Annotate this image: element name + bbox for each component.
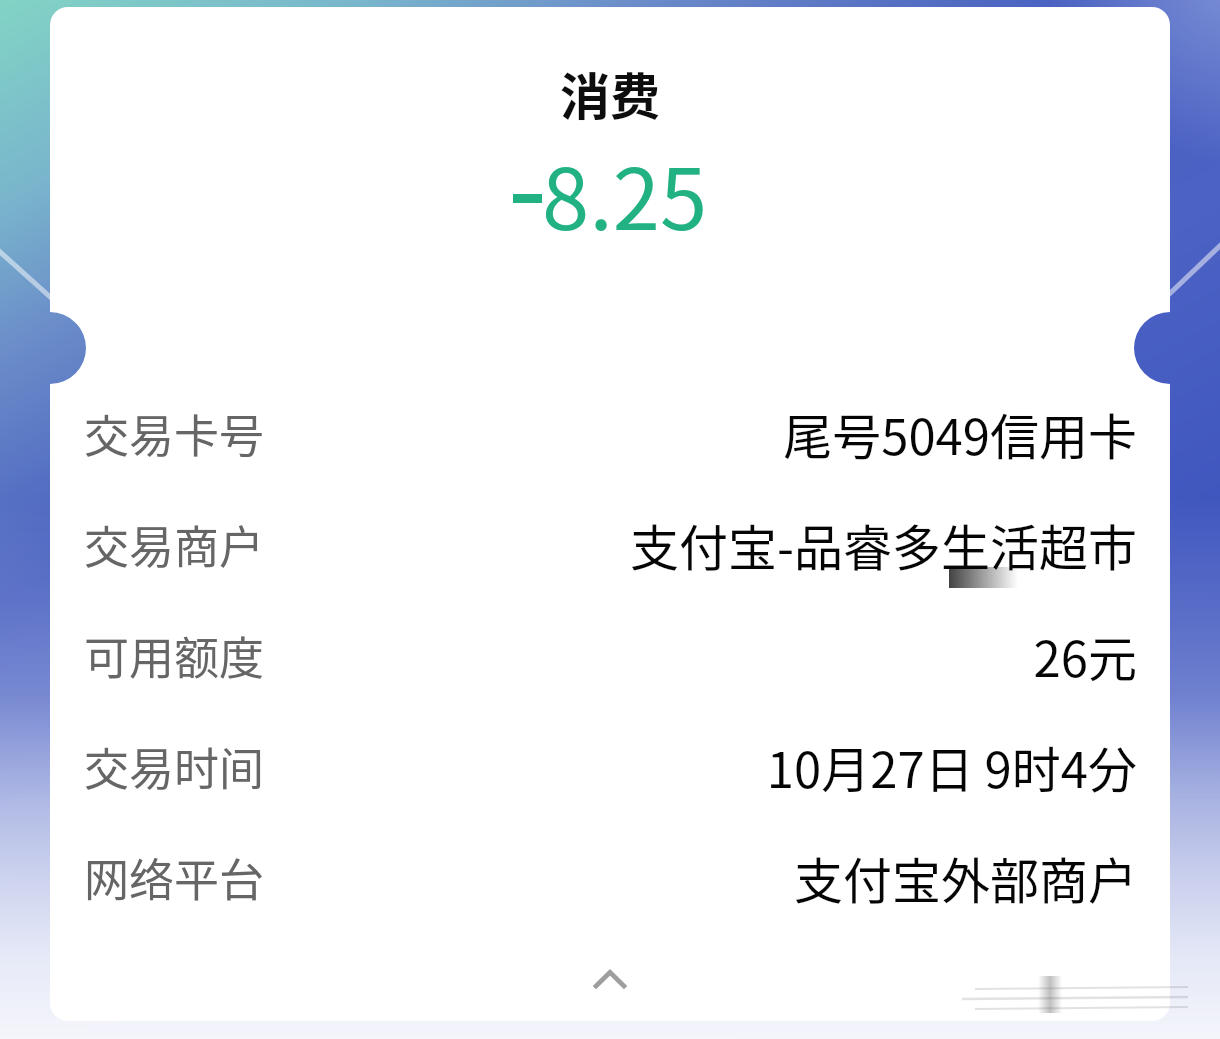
staticText: 8.25	[542, 131, 708, 254]
staticText: 10月27日 9时4分	[275, 731, 1137, 802]
staticText: 支付宝-品睿多生活超市	[275, 509, 1137, 580]
staticText: 网络平台	[84, 845, 265, 910]
button[interactable]: 交易卡号	[50, 378, 1170, 489]
button[interactable]: Collapse	[50, 933, 1170, 1023]
button[interactable]: 可用额度	[50, 600, 1170, 711]
staticText: 尾号5049信用卡	[275, 398, 1137, 469]
button[interactable]: 交易时间	[50, 711, 1170, 822]
staticText: 消费	[50, 57, 1170, 129]
staticText: 交易商户	[84, 512, 265, 577]
button[interactable]: 交易商户	[50, 489, 1170, 600]
staticText: 交易时间	[84, 734, 265, 799]
button[interactable]: 网络平台	[50, 822, 1170, 933]
staticText: 可用额度	[84, 623, 265, 688]
staticText: 交易卡号	[84, 401, 265, 466]
staticText: 26元	[275, 620, 1137, 691]
staticText: 支付宝外部商户	[275, 842, 1137, 913]
